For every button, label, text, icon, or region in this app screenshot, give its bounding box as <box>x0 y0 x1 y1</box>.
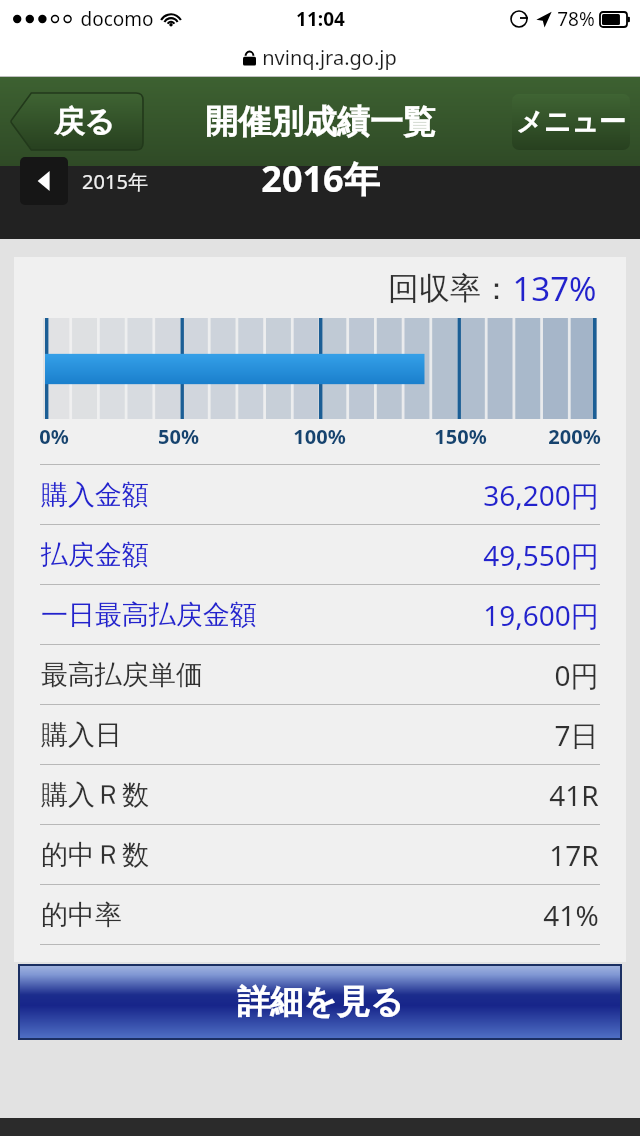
staticText: 200% <box>548 423 601 450</box>
staticText: 17R <box>549 836 599 874</box>
staticText: 2015年 <box>82 168 148 195</box>
button[interactable]: 購入Ｒ数 <box>15 765 625 824</box>
button[interactable]: 戻る <box>10 93 143 150</box>
staticText: 詳細を見る <box>237 981 404 1023</box>
staticText: 11:04 <box>296 6 345 32</box>
staticText: 41% <box>543 896 599 934</box>
staticText: 回収率： <box>388 269 512 308</box>
button[interactable]: 詳細を見る <box>20 966 620 1038</box>
button[interactable]: 前の年 <box>20 157 68 205</box>
staticText: 払戻金額 <box>41 538 149 572</box>
button[interactable]: 最高払戻単価 <box>15 645 625 704</box>
staticText: 購入日 <box>41 718 122 752</box>
staticText: 0円 <box>554 656 599 694</box>
staticText: 開催別成績一覧 <box>205 101 436 143</box>
button[interactable]: 的中率 <box>15 885 625 944</box>
staticText: 19,600円 <box>483 596 599 634</box>
staticText: docomo <box>80 6 154 32</box>
staticText: 100% <box>293 423 346 450</box>
staticText: 的中率 <box>41 898 122 932</box>
staticText: 150% <box>434 423 487 450</box>
button[interactable]: メニュー <box>512 94 630 150</box>
staticText: 41R <box>549 776 599 814</box>
staticText: 戻る <box>54 103 115 141</box>
staticText: 36,200円 <box>483 476 599 514</box>
staticText: 最高払戻単価 <box>41 658 203 692</box>
staticText: 購入金額 <box>41 478 149 512</box>
button[interactable]: 一日最高払戻金額 <box>15 585 625 644</box>
staticText: 0% <box>39 423 69 450</box>
staticText: 2016年 <box>261 154 380 203</box>
staticText: 一日最高払戻金額 <box>41 598 257 632</box>
button[interactable]: 購入日 <box>15 705 625 764</box>
button[interactable]: 的中Ｒ数 <box>15 825 625 884</box>
staticText: メニュー <box>516 105 626 139</box>
button[interactable]: 購入金額 <box>15 465 625 524</box>
staticText: 7日 <box>554 716 599 754</box>
staticText: 78% <box>557 6 595 32</box>
staticText: 49,550円 <box>483 536 599 574</box>
staticText: 購入Ｒ数 <box>41 778 149 812</box>
staticText: nvinq.jra.go.jp <box>262 44 397 71</box>
staticText: 137% <box>512 266 597 311</box>
staticText: 50% <box>158 423 199 450</box>
button[interactable]: 払戻金額 <box>15 525 625 584</box>
staticText: 的中Ｒ数 <box>41 838 149 872</box>
